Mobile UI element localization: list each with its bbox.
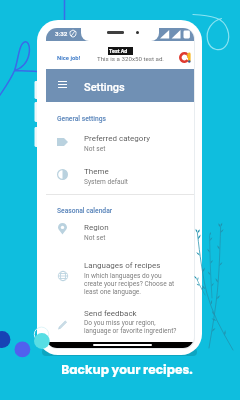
- staticText: Region: [84, 223, 109, 232]
- staticText: Nice job!: [57, 55, 81, 62]
- staticText: Preferred category: [84, 134, 150, 143]
- button[interactable]: Open navigation menu: [46, 69, 194, 102]
- staticText: Backup your recipes.: [7, 361, 240, 378]
- staticText: Not set: [84, 234, 106, 242]
- staticText: Test Ad: [109, 48, 128, 54]
- staticText: Settings: [84, 81, 125, 94]
- button[interactable]: [46, 255, 194, 305]
- other: Open navigation menu: [58, 81, 67, 88]
- button[interactable]: [46, 303, 194, 341]
- staticText: Languages of recipes: [84, 261, 161, 270]
- button[interactable]: [46, 128, 194, 160]
- staticText: In which languages do you create your re…: [84, 272, 175, 296]
- staticText: General settings: [57, 115, 106, 123]
- staticText: This is a 320x50 test ad.: [97, 55, 165, 62]
- staticText: 3:32: [55, 30, 68, 37]
- staticText: Seasonal calendar: [57, 207, 113, 215]
- staticText: Not set: [84, 145, 106, 153]
- button[interactable]: [46, 161, 194, 193]
- staticText: Theme: [84, 167, 109, 176]
- staticText: Send feedback: [84, 309, 137, 318]
- button[interactable]: [46, 216, 194, 248]
- staticText: System default: [84, 178, 128, 186]
- staticText: Do you miss your region, language or fav…: [84, 319, 177, 335]
